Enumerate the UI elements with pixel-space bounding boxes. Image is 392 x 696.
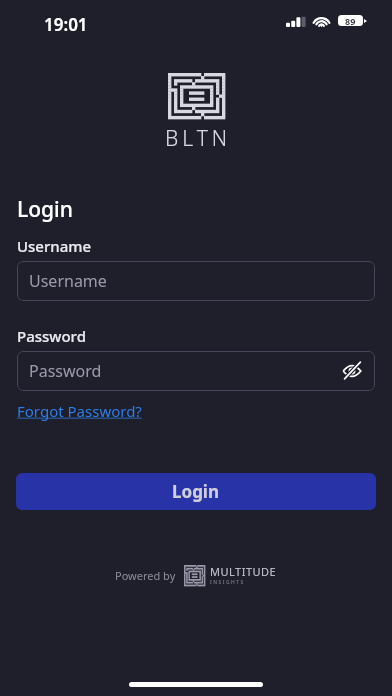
button[interactable]: Password <box>17 351 375 391</box>
staticText: Password <box>29 360 102 382</box>
staticText: Powered by <box>115 568 176 583</box>
staticText: Login <box>172 480 220 503</box>
staticText: 89 <box>345 15 356 26</box>
button[interactable]: Username <box>17 261 375 301</box>
staticText: INSIGHTS <box>210 579 245 586</box>
staticText: 19:01 <box>44 13 88 36</box>
staticText: Password <box>17 326 86 346</box>
staticText: MULTITUDE <box>210 564 277 579</box>
staticText: Forgot Password? <box>17 401 142 421</box>
button[interactable]: Login <box>16 473 376 510</box>
button[interactable]: Forgot Password? <box>17 401 142 421</box>
staticText: BLTN <box>165 124 232 153</box>
staticText: Username <box>17 236 92 256</box>
staticText: Login <box>17 195 73 224</box>
staticText: Username <box>29 270 107 292</box>
